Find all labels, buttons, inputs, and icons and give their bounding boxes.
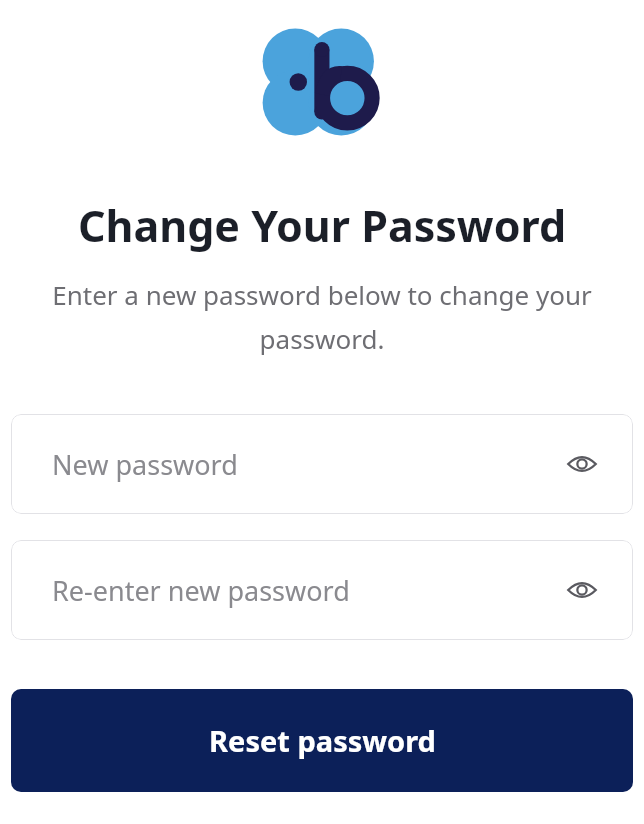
button[interactable]: Show re-entered password (559, 567, 605, 613)
staticText: New password (52, 446, 238, 483)
button[interactable]: Show new password (559, 441, 605, 487)
staticText: Reset password (209, 721, 436, 760)
staticText: Enter a new password below to change you… (22, 277, 622, 356)
button[interactable]: Reset password (11, 689, 633, 792)
button[interactable]: New password (11, 414, 633, 514)
staticText: Change Your Password (0, 196, 644, 255)
button[interactable]: Re-enter new password (11, 540, 633, 640)
staticText: Re-enter new password (52, 572, 350, 609)
